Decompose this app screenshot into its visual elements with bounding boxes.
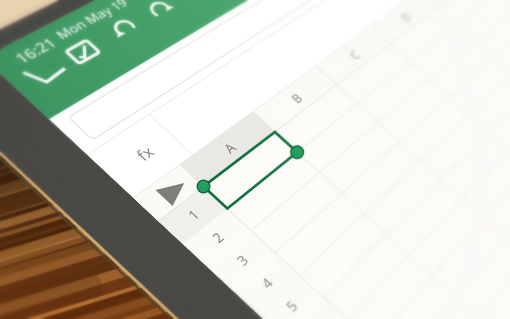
button[interactable]: Spreadsheet open on a tablet [0, 0, 510, 319]
